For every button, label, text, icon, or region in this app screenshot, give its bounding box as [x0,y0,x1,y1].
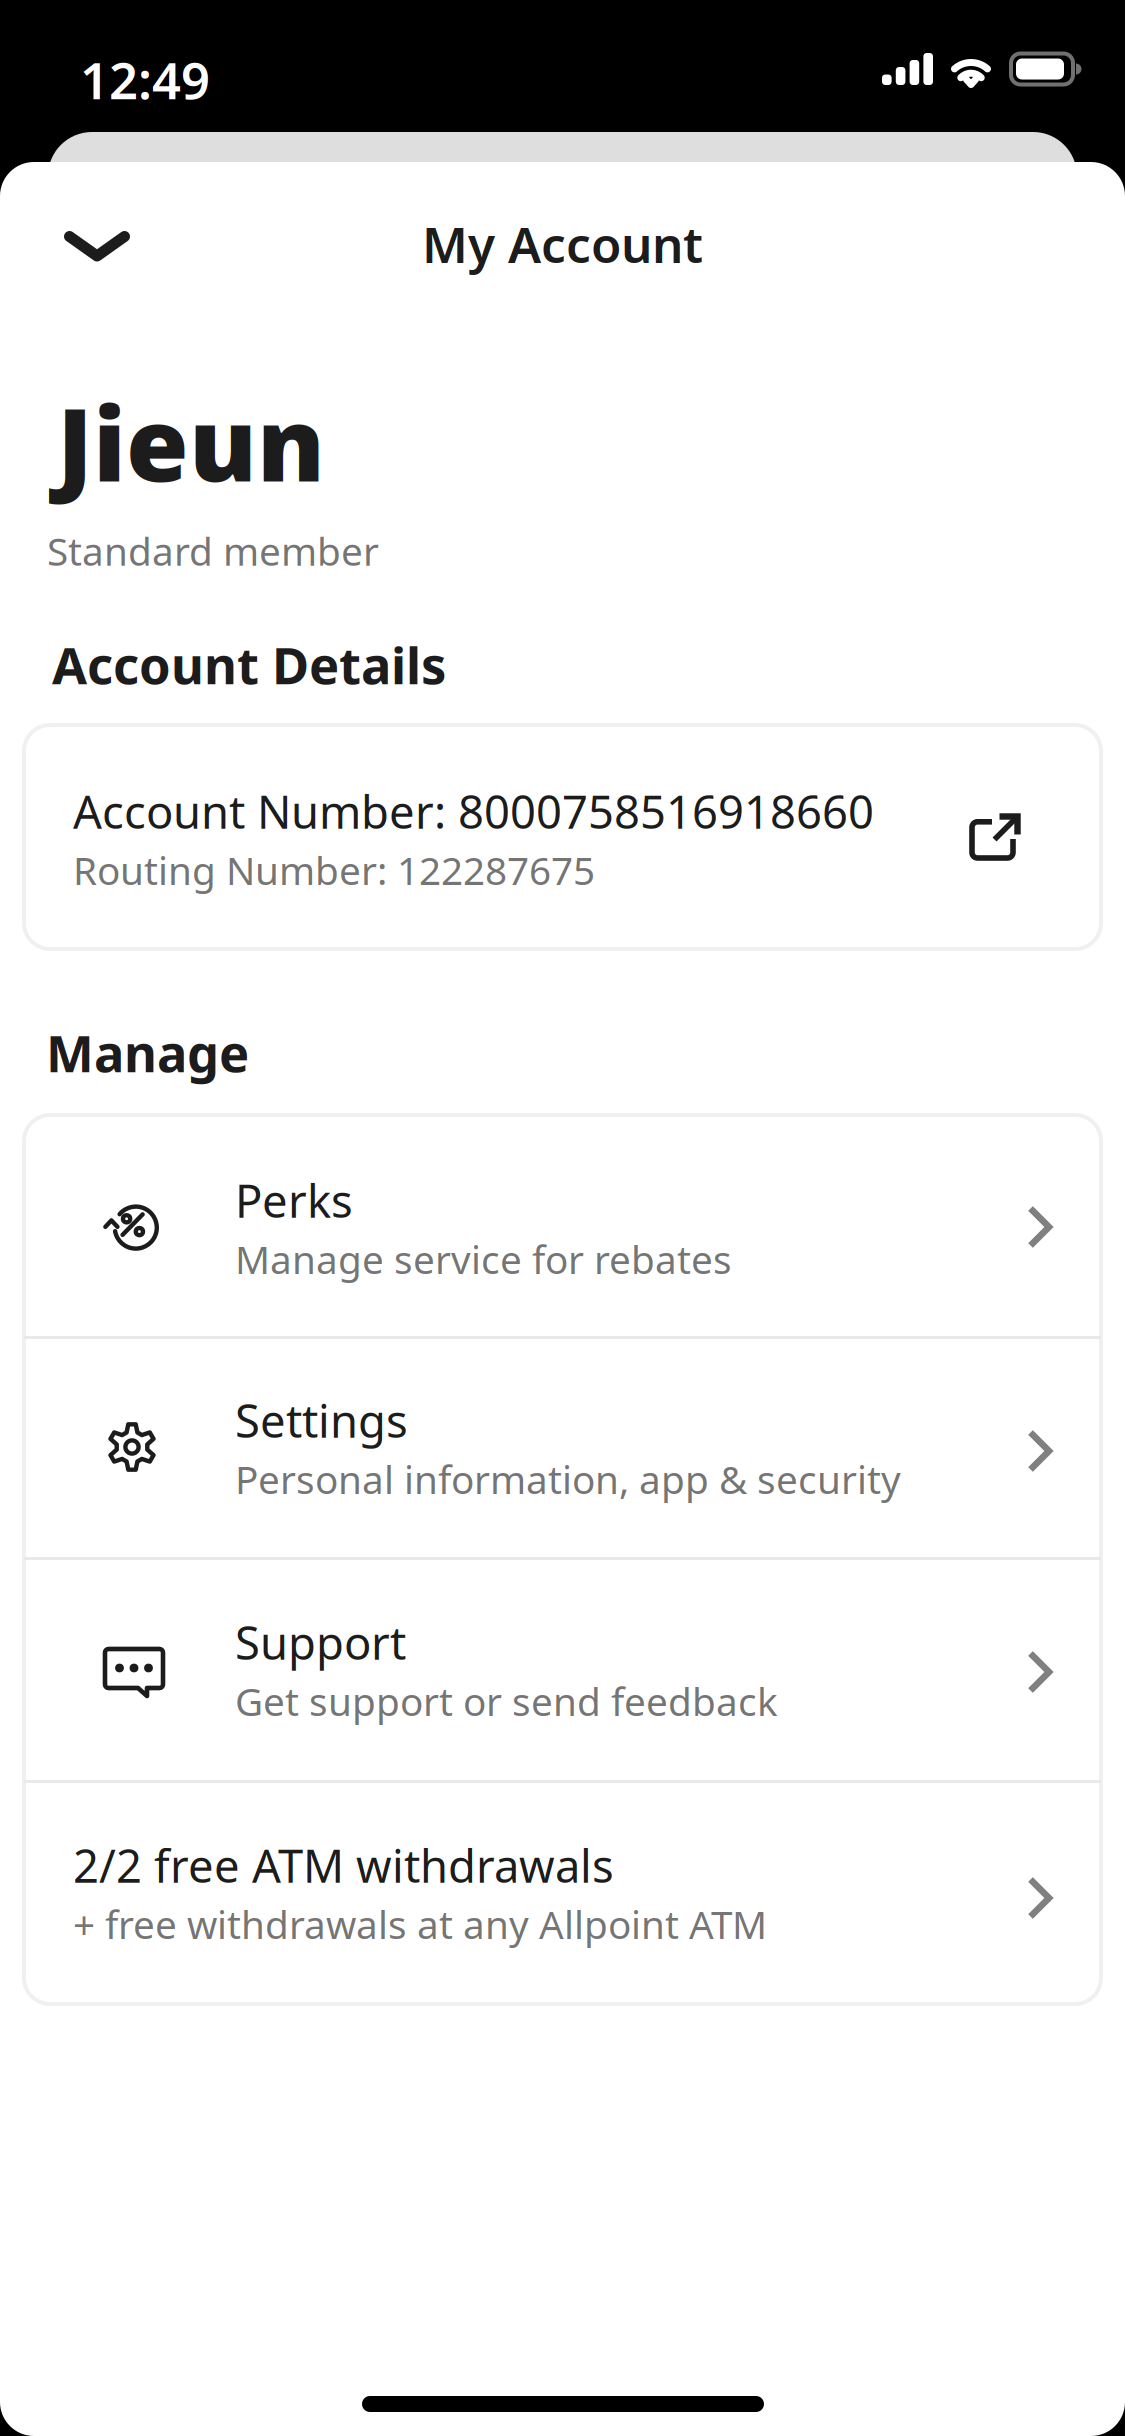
button[interactable]: Settings [24,1339,1101,1560]
staticText: Manage service for rebates [235,1233,732,1284]
staticText: Jieun [57,375,325,510]
staticText: Settings [235,1390,408,1450]
staticText: + free withdrawals at any Allpoint ATM [73,1898,767,1949]
staticText: Manage [46,1019,249,1086]
staticText: My Account [422,211,703,276]
button[interactable]: Close [34,205,160,289]
staticText: Perks [235,1170,353,1230]
staticText: Support [235,1612,406,1672]
button[interactable]: 2/2 free ATM withdrawals [24,1783,1101,2007]
staticText: Routing Number: 122287675 [73,844,595,895]
staticText: 2/2 free ATM withdrawals [73,1835,614,1895]
staticText: Standard member [47,525,379,576]
staticText: Get support or send feedback [235,1675,778,1726]
button[interactable]: Account Number: 8000758516918660 [24,725,1101,949]
staticText: 12:49 [80,46,210,113]
button[interactable]: Support [24,1560,1101,1783]
staticText: Account Details [52,631,446,698]
button[interactable]: Perks [24,1115,1101,1336]
staticText: Account Number: 8000758516918660 [73,781,874,841]
staticText: Personal information, app & security [235,1453,901,1504]
